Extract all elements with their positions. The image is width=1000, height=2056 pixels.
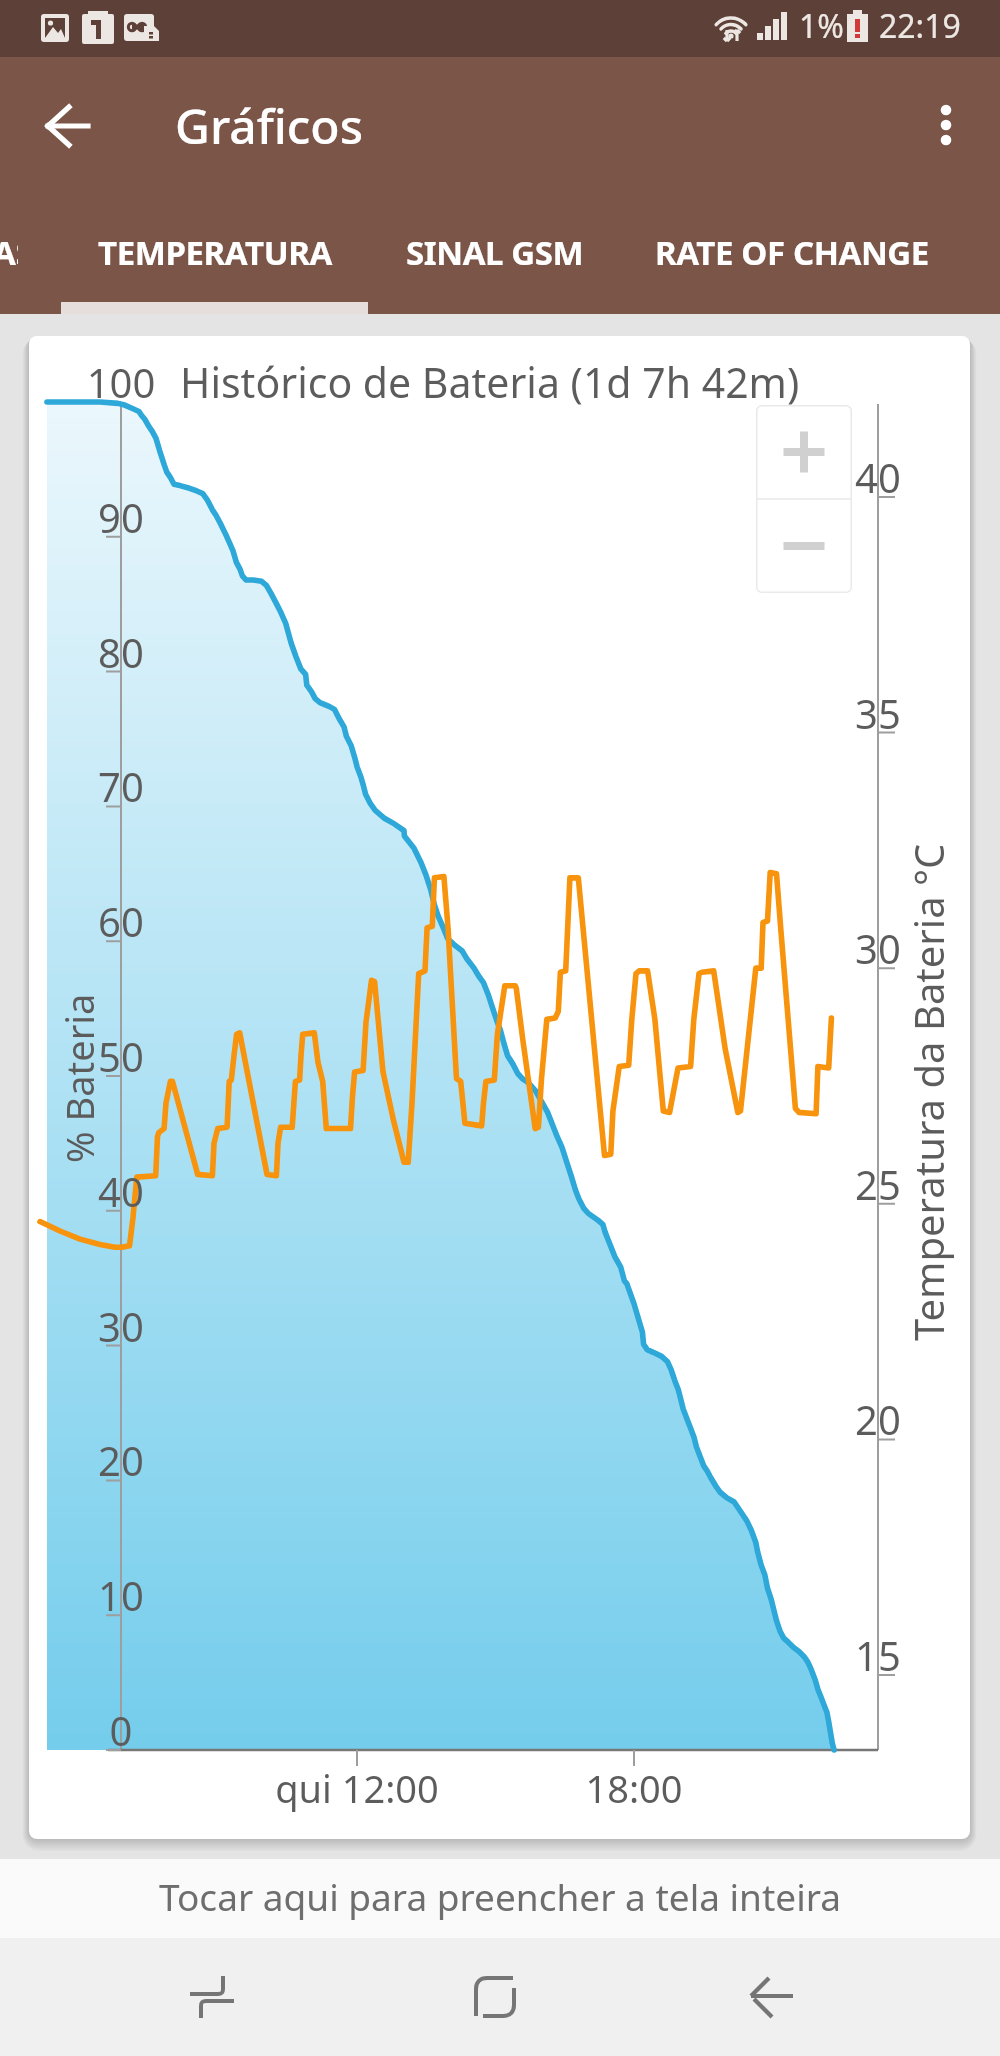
button[interactable]: More options [904, 83, 988, 167]
staticText: 18:00 [514, 1762, 754, 1814]
staticText: Gráficos [175, 93, 363, 158]
button[interactable]: Tocar aqui para preencher a tela inteira [0, 1859, 1000, 1938]
staticText: 60 [31, 894, 211, 948]
staticText: ESTATÍSTICAS [0, 230, 18, 275]
staticText: 40 [788, 450, 968, 504]
staticText: 50 [31, 1029, 211, 1083]
staticText: Tocar aqui para preencher a tela inteira [159, 1871, 842, 1921]
staticText: 30 [31, 1299, 211, 1353]
button[interactable]: Zoom out [756, 499, 852, 593]
staticText: 90 [31, 490, 211, 544]
staticText: 20 [788, 1392, 968, 1446]
staticText: 100 [31, 355, 211, 409]
staticText: % Bateria [53, 993, 105, 1163]
button[interactable]: Zoom in [756, 405, 852, 499]
staticText: 22:19 [879, 4, 961, 48]
staticText: RATE OF CHANGE [655, 230, 929, 275]
staticText: 35 [788, 686, 968, 740]
button[interactable]: RATE OF CHANGE [641, 212, 943, 314]
staticText: 20 [31, 1433, 211, 1487]
staticText: Histórico de Bateria (1d 7h 42m) [180, 354, 800, 410]
staticText: qui 12:00 [237, 1762, 477, 1814]
staticText: 40 [31, 1164, 211, 1218]
button[interactable]: TEMPERATURA [61, 212, 368, 314]
button[interactable]: ESTATÍSTICAS [0, 212, 18, 314]
staticText: 70 [31, 759, 211, 813]
staticText: 30 [788, 921, 968, 975]
staticText: 25 [788, 1157, 968, 1211]
staticText: 10 [31, 1568, 211, 1622]
staticText: TEMPERATURA [98, 230, 332, 275]
staticText: Temperatura da Bateria °C [901, 843, 955, 1341]
staticText: 80 [31, 625, 211, 679]
button[interactable]: Home [435, 1938, 555, 2056]
staticText: 15 [788, 1628, 968, 1682]
button[interactable]: Back [26, 83, 110, 167]
staticText: 1% [799, 4, 844, 48]
button[interactable]: Back [712, 1938, 832, 2056]
staticText: 0 [31, 1703, 211, 1757]
staticText: SINAL GSM [406, 230, 584, 275]
button[interactable]: Recent apps [152, 1938, 272, 2056]
button[interactable]: SINAL GSM [398, 212, 591, 314]
